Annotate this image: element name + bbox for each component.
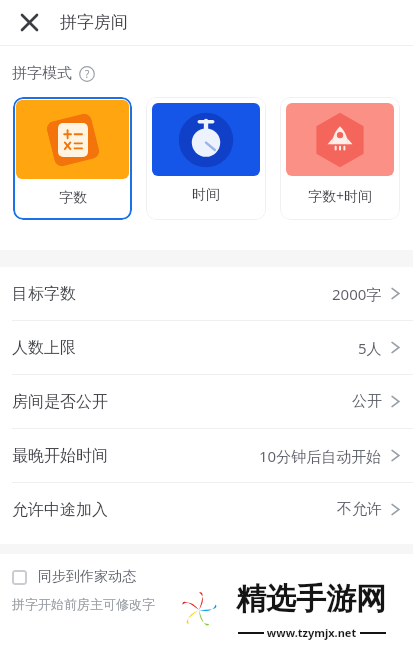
button[interactable]: 目标字数 (0, 267, 413, 320)
staticText: 人数上限 (12, 338, 76, 358)
staticText: 2000字 (332, 284, 382, 304)
button[interactable]: 同步到作家动态 (12, 568, 136, 586)
button[interactable]: 房间是否公开 (0, 375, 413, 428)
staticText: 拼字房间 (60, 12, 128, 33)
staticText: www.tzymjx.net (264, 625, 360, 640)
staticText: 字数 (59, 189, 87, 207)
button[interactable]: 人数上限 (0, 321, 413, 374)
button[interactable]: 允许中途加入 (0, 483, 413, 536)
staticText: 字数+时间 (308, 186, 373, 205)
staticText: 拼字模式 (12, 64, 72, 83)
staticText: 公开 (352, 392, 382, 411)
staticText: 同步到作家动态 (38, 568, 136, 586)
staticText: 房间是否公开 (12, 392, 108, 412)
staticText: 精选手游网 (236, 580, 386, 618)
button[interactable]: 字数+时间 (280, 97, 400, 220)
staticText: 5人 (358, 338, 382, 358)
staticText: 时间 (192, 186, 220, 204)
staticText: 允许中途加入 (12, 500, 108, 520)
staticText: 不允许 (337, 500, 382, 519)
staticText: 最晚开始时间 (12, 446, 108, 466)
button[interactable]: 字数 (13, 97, 132, 220)
staticText: 目标字数 (12, 284, 76, 304)
button[interactable]: 最晚开始时间 (0, 429, 413, 482)
staticText: 10分钟后自动开始 (259, 446, 382, 466)
staticText: ? (85, 67, 90, 81)
staticText: 拼字开始前房主可修改字 (12, 596, 155, 612)
button[interactable]: 时间 (146, 97, 266, 220)
button[interactable]: Help (79, 66, 95, 82)
button[interactable]: Close (12, 5, 46, 39)
